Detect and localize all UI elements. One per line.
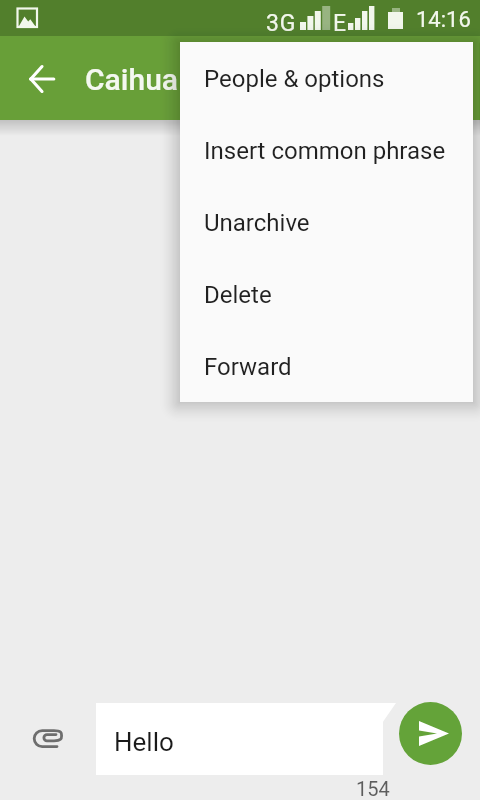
staticText: 3G xyxy=(266,10,296,37)
staticText: Unarchive xyxy=(204,209,310,237)
staticText: 154 xyxy=(356,777,390,800)
staticText: Delete xyxy=(204,281,272,309)
staticText: Hello xyxy=(114,727,174,757)
button[interactable]: Forward xyxy=(180,330,473,402)
button[interactable]: Delete xyxy=(180,258,473,330)
button[interactable]: People & options xyxy=(180,42,473,114)
button[interactable]: Unarchive xyxy=(180,186,473,258)
button[interactable]: Hello xyxy=(96,703,396,775)
staticText: E xyxy=(333,10,347,37)
button[interactable]: Send xyxy=(399,702,462,765)
staticText: Forward xyxy=(204,353,292,381)
staticText: 14:16 xyxy=(416,7,471,33)
staticText: Caihua xyxy=(85,62,179,97)
button[interactable]: Insert common phrase xyxy=(180,114,473,186)
button[interactable]: Attach xyxy=(24,713,76,765)
staticText: People & options xyxy=(204,65,385,93)
button[interactable]: Navigate up xyxy=(18,55,66,103)
staticText: Insert common phrase xyxy=(204,137,446,165)
